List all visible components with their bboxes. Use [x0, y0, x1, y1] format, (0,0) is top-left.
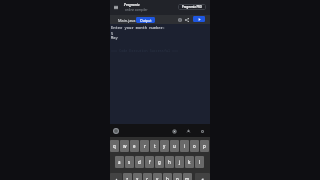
staticText: c: [146, 176, 149, 180]
button[interactable]: Shift: [110, 173, 122, 180]
button[interactable]: a: [115, 156, 124, 168]
staticText: May: [111, 35, 118, 40]
button[interactable]: y: [160, 140, 169, 152]
button[interactable]: Main.java: [116, 16, 138, 24]
staticText: Output: [140, 18, 152, 23]
button[interactable]: u: [170, 140, 179, 152]
staticText: n: [176, 176, 179, 180]
button[interactable]: s: [125, 156, 134, 168]
staticText: Programiz PRO: [182, 5, 202, 9]
staticText: i: [184, 143, 186, 149]
staticText: x: [136, 176, 139, 180]
button[interactable]: Run: [193, 16, 205, 22]
button[interactable]: v: [153, 173, 162, 180]
button[interactable]: k: [185, 156, 194, 168]
staticText: b: [166, 176, 169, 180]
button[interactable]: b: [163, 173, 172, 180]
button[interactable]: r: [140, 140, 149, 152]
button[interactable]: p: [200, 140, 209, 152]
staticText: z: [126, 176, 129, 180]
staticText: y: [163, 143, 166, 149]
button[interactable]: n: [173, 173, 182, 180]
button[interactable]: Backspace: [195, 173, 210, 180]
button[interactable]: e: [130, 140, 139, 152]
button[interactable]: f: [145, 156, 154, 168]
button[interactable]: g: [155, 156, 164, 168]
staticText: d: [138, 159, 141, 165]
button[interactable]: d: [135, 156, 144, 168]
button[interactable]: h: [165, 156, 174, 168]
staticText: o: [193, 143, 196, 149]
button[interactable]: Gboard: [113, 128, 119, 134]
staticText: u: [173, 143, 176, 149]
staticText: p: [203, 143, 206, 149]
button[interactable]: Stickers: [184, 127, 192, 135]
button[interactable]: c: [143, 173, 152, 180]
staticText: w: [123, 143, 127, 149]
staticText: f: [149, 159, 151, 165]
staticText: j: [179, 159, 181, 165]
staticText: online compiler: [125, 8, 148, 12]
button[interactable]: x: [133, 173, 142, 180]
staticText: Programiz: [124, 3, 140, 7]
button[interactable]: Keyboard settings: [198, 127, 206, 135]
staticText: Main.java: [118, 18, 136, 23]
button[interactable]: q: [110, 140, 119, 152]
button[interactable]: z: [123, 173, 132, 180]
button[interactable]: Settings: [176, 16, 184, 24]
button[interactable]: Clipboard: [170, 127, 178, 135]
staticText: l: [199, 159, 201, 165]
button[interactable]: Output: [136, 17, 155, 23]
staticText: m: [185, 176, 190, 180]
staticText: g: [158, 159, 161, 165]
staticText: q: [113, 143, 116, 149]
button[interactable]: t: [150, 140, 159, 152]
button[interactable]: w: [120, 140, 129, 152]
button[interactable]: m: [183, 173, 192, 180]
button[interactable]: i: [180, 140, 189, 152]
staticText: k: [188, 159, 191, 165]
staticText: v: [156, 176, 159, 180]
staticText: t: [154, 143, 156, 149]
staticText: r: [144, 143, 146, 149]
button[interactable]: o: [190, 140, 199, 152]
staticText: s: [128, 159, 131, 165]
staticText: 5: [111, 31, 114, 36]
staticText: e: [133, 143, 136, 149]
staticText: Enter your month number:: [111, 25, 166, 30]
button[interactable]: l: [195, 156, 204, 168]
button[interactable]: j: [175, 156, 184, 168]
staticText: h: [168, 159, 171, 165]
button[interactable]: Programiz PRO: [178, 4, 206, 10]
staticText: a: [118, 159, 121, 165]
button[interactable]: Share: [183, 16, 191, 24]
button[interactable]: Menu: [111, 2, 121, 12]
